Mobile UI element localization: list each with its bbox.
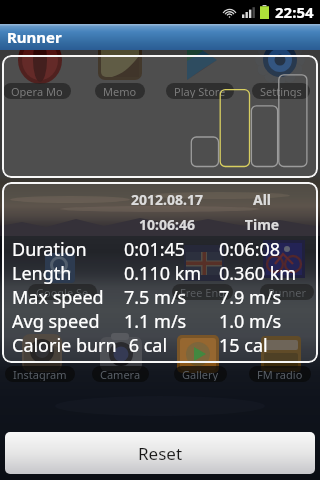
staticText: Duration — [12, 237, 124, 261]
staticText: Instagram — [13, 367, 67, 381]
staticText: 0.360 km — [219, 261, 314, 285]
button[interactable]: Activity bar chart — [2, 55, 318, 178]
staticText: Play Store — [174, 84, 226, 98]
staticText: Time — [215, 215, 309, 234]
staticText: 0.110 km — [124, 261, 219, 285]
staticText: Settings — [260, 84, 302, 98]
staticText: Reset — [138, 442, 183, 465]
staticText: 6 cal — [124, 333, 219, 357]
other: Battery — [260, 5, 269, 19]
staticText: 7.5 m/s — [124, 285, 219, 309]
staticText: Memo — [103, 84, 137, 98]
staticText: Gallery — [182, 367, 219, 381]
staticText: All — [215, 190, 309, 209]
staticText: Length — [12, 261, 124, 285]
staticText: 2012.08.17 — [119, 190, 215, 209]
staticText: Opera Mo — [11, 84, 63, 98]
staticText: 0:01:45 — [124, 237, 219, 261]
staticText: Calorie burn — [12, 333, 124, 357]
staticText: Free Eng — [180, 285, 225, 299]
staticText: FM radio — [257, 367, 303, 381]
staticText: 7.9 m/s — [219, 285, 314, 309]
staticText: Google Se — [36, 285, 89, 299]
staticText: Runner — [7, 27, 62, 47]
staticText: 15 cal — [219, 333, 314, 357]
staticText: Max speed — [12, 285, 124, 309]
other: Wi-Fi — [222, 5, 237, 20]
staticText: 1.0 m/s — [219, 309, 314, 333]
staticText: Runner — [268, 285, 306, 299]
staticText: Camera — [100, 367, 141, 381]
staticText: 1.1 m/s — [124, 309, 219, 333]
staticText: 10:06:46 — [119, 215, 215, 234]
staticText: 22:54 — [275, 2, 314, 22]
button[interactable]: Reset — [5, 432, 315, 474]
other: Signal strength — [242, 6, 255, 18]
staticText: 0:06:08 — [219, 237, 314, 261]
staticText: Avg speed — [12, 309, 124, 333]
